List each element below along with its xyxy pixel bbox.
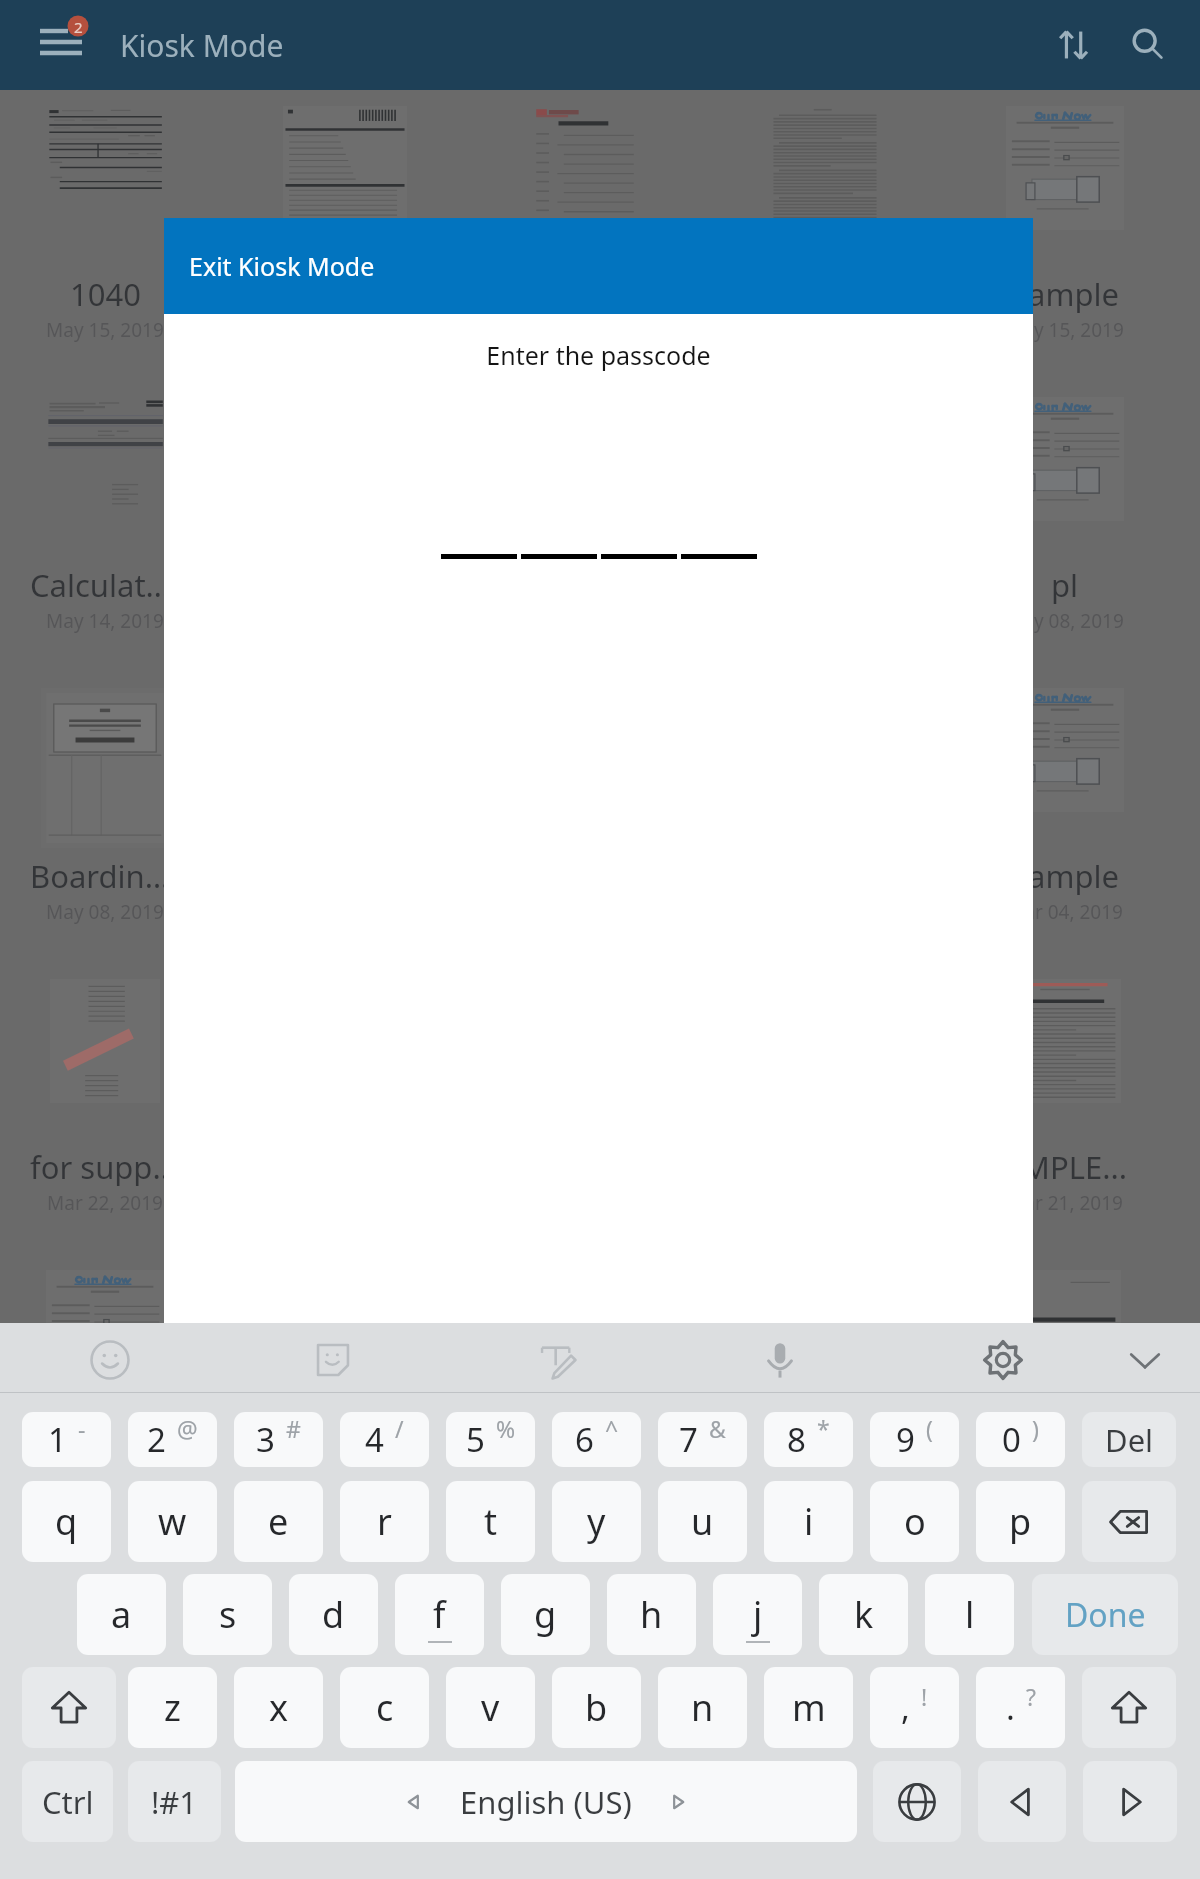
button[interactable]: , bbox=[870, 1667, 959, 1748]
button[interactable]: v bbox=[446, 1667, 535, 1748]
button[interactable]: 4 bbox=[340, 1412, 429, 1467]
button[interactable]: d bbox=[289, 1574, 378, 1655]
button[interactable]: Doc bbox=[225, 385, 465, 676]
button[interactable]: Hide keyboard bbox=[1111, 1326, 1179, 1394]
staticText: q bbox=[55, 1497, 78, 1546]
button[interactable]: Keyboard settings bbox=[969, 1326, 1037, 1394]
button[interactable]: u bbox=[658, 1481, 747, 1562]
button[interactable]: Del bbox=[1082, 1412, 1176, 1467]
button[interactable]: h bbox=[607, 1574, 696, 1655]
staticText: May 15, 2019 bbox=[46, 317, 164, 343]
button[interactable]: Doc bbox=[225, 1258, 465, 1549]
button[interactable]: Search bbox=[1116, 13, 1180, 77]
button[interactable]: Voice input bbox=[746, 1326, 814, 1394]
button[interactable]: 1 bbox=[22, 1412, 111, 1467]
button[interactable]: t bbox=[446, 1481, 535, 1562]
button[interactable]: l bbox=[925, 1574, 1014, 1655]
button[interactable]: English (US) bbox=[235, 1761, 857, 1842]
staticText: j bbox=[753, 1590, 763, 1639]
button[interactable]: q bbox=[22, 1481, 111, 1562]
button[interactable]: for suppor... bbox=[0, 967, 225, 1258]
button[interactable]: 3 bbox=[234, 1412, 323, 1467]
button[interactable]: Ctrl bbox=[22, 1761, 113, 1842]
button[interactable]: a bbox=[77, 1574, 166, 1655]
button[interactable]: k bbox=[819, 1574, 908, 1655]
button[interactable]: . bbox=[976, 1667, 1065, 1748]
staticText: z bbox=[164, 1683, 181, 1732]
button[interactable]: !#1 bbox=[128, 1761, 221, 1842]
button[interactable]: z bbox=[128, 1667, 217, 1748]
button[interactable]: Change language bbox=[873, 1761, 961, 1842]
button[interactable]: Doc bbox=[0, 1258, 225, 1549]
button[interactable]: 9 bbox=[870, 1412, 959, 1467]
button[interactable]: p bbox=[976, 1481, 1065, 1562]
button[interactable]: s bbox=[183, 1574, 272, 1655]
staticText: May 14, 2019 bbox=[46, 608, 164, 634]
button[interactable]: Backspace bbox=[1082, 1481, 1176, 1562]
button[interactable]: 6 bbox=[552, 1412, 641, 1467]
button[interactable]: e bbox=[234, 1481, 323, 1562]
staticText: . bbox=[1006, 1685, 1015, 1730]
button[interactable]: Handwriting bbox=[523, 1326, 591, 1394]
button[interactable]: 1040 bbox=[0, 94, 225, 385]
button[interactable]: Move cursor right bbox=[1083, 1761, 1177, 1842]
button[interactable]: Move cursor left bbox=[978, 1761, 1066, 1842]
staticText: u bbox=[691, 1497, 714, 1546]
button[interactable]: Calculate... bbox=[0, 385, 225, 676]
button[interactable]: Passcode input bbox=[164, 517, 1033, 559]
button[interactable]: Sample bbox=[945, 676, 1185, 967]
button[interactable]: 2 bbox=[128, 1412, 217, 1467]
button[interactable]: Doc bbox=[465, 1258, 705, 1549]
button[interactable]: BoardingC... bbox=[0, 676, 225, 967]
button[interactable]: Offer bbox=[465, 94, 705, 385]
button[interactable]: i bbox=[764, 1481, 853, 1562]
staticText: k bbox=[854, 1590, 874, 1639]
button[interactable]: Emoji bbox=[76, 1326, 144, 1394]
button[interactable]: m bbox=[764, 1667, 853, 1748]
button[interactable]: j bbox=[713, 1574, 802, 1655]
button[interactable]: x bbox=[234, 1667, 323, 1748]
button[interactable]: o bbox=[870, 1481, 959, 1562]
button[interactable]: Terms bbox=[705, 94, 945, 385]
button[interactable]: AMPLE... bbox=[945, 967, 1185, 1258]
button[interactable]: Shift bbox=[1082, 1667, 1176, 1748]
button[interactable]: b bbox=[552, 1667, 641, 1748]
button[interactable]: n bbox=[658, 1667, 747, 1748]
button[interactable]: Doc bbox=[705, 385, 945, 676]
button[interactable]: w bbox=[128, 1481, 217, 1562]
button[interactable]: Sort bbox=[1042, 13, 1106, 77]
button[interactable]: r bbox=[340, 1481, 429, 1562]
button[interactable]: Done bbox=[1032, 1574, 1178, 1655]
button[interactable]: Open navigation menu bbox=[14, 8, 90, 84]
button[interactable]: Sample bbox=[945, 94, 1185, 385]
button[interactable]: Doc bbox=[705, 1258, 945, 1549]
button[interactable]: pl bbox=[945, 385, 1185, 676]
button[interactable]: 0 bbox=[976, 1412, 1065, 1467]
staticText: ) bbox=[1032, 1413, 1039, 1444]
button[interactable]: Stickers bbox=[299, 1326, 367, 1394]
button[interactable]: Shift bbox=[22, 1667, 116, 1748]
button[interactable]: c bbox=[340, 1667, 429, 1748]
button[interactable]: Doc bbox=[465, 385, 705, 676]
button[interactable]: f bbox=[395, 1574, 484, 1655]
button[interactable]: Doc bbox=[945, 1258, 1185, 1549]
button[interactable]: g bbox=[501, 1574, 590, 1655]
button[interactable]: 5 bbox=[446, 1412, 535, 1467]
staticText: 6 bbox=[575, 1417, 594, 1462]
button[interactable]: Contract bbox=[225, 94, 465, 385]
button[interactable]: y bbox=[552, 1481, 641, 1562]
button[interactable]: 7 bbox=[658, 1412, 747, 1467]
staticText: BoardingC... bbox=[30, 855, 180, 897]
staticText: Mar 04, 2019 bbox=[1007, 899, 1123, 925]
staticText: f bbox=[433, 1590, 446, 1639]
button[interactable]: 8 bbox=[764, 1412, 853, 1467]
